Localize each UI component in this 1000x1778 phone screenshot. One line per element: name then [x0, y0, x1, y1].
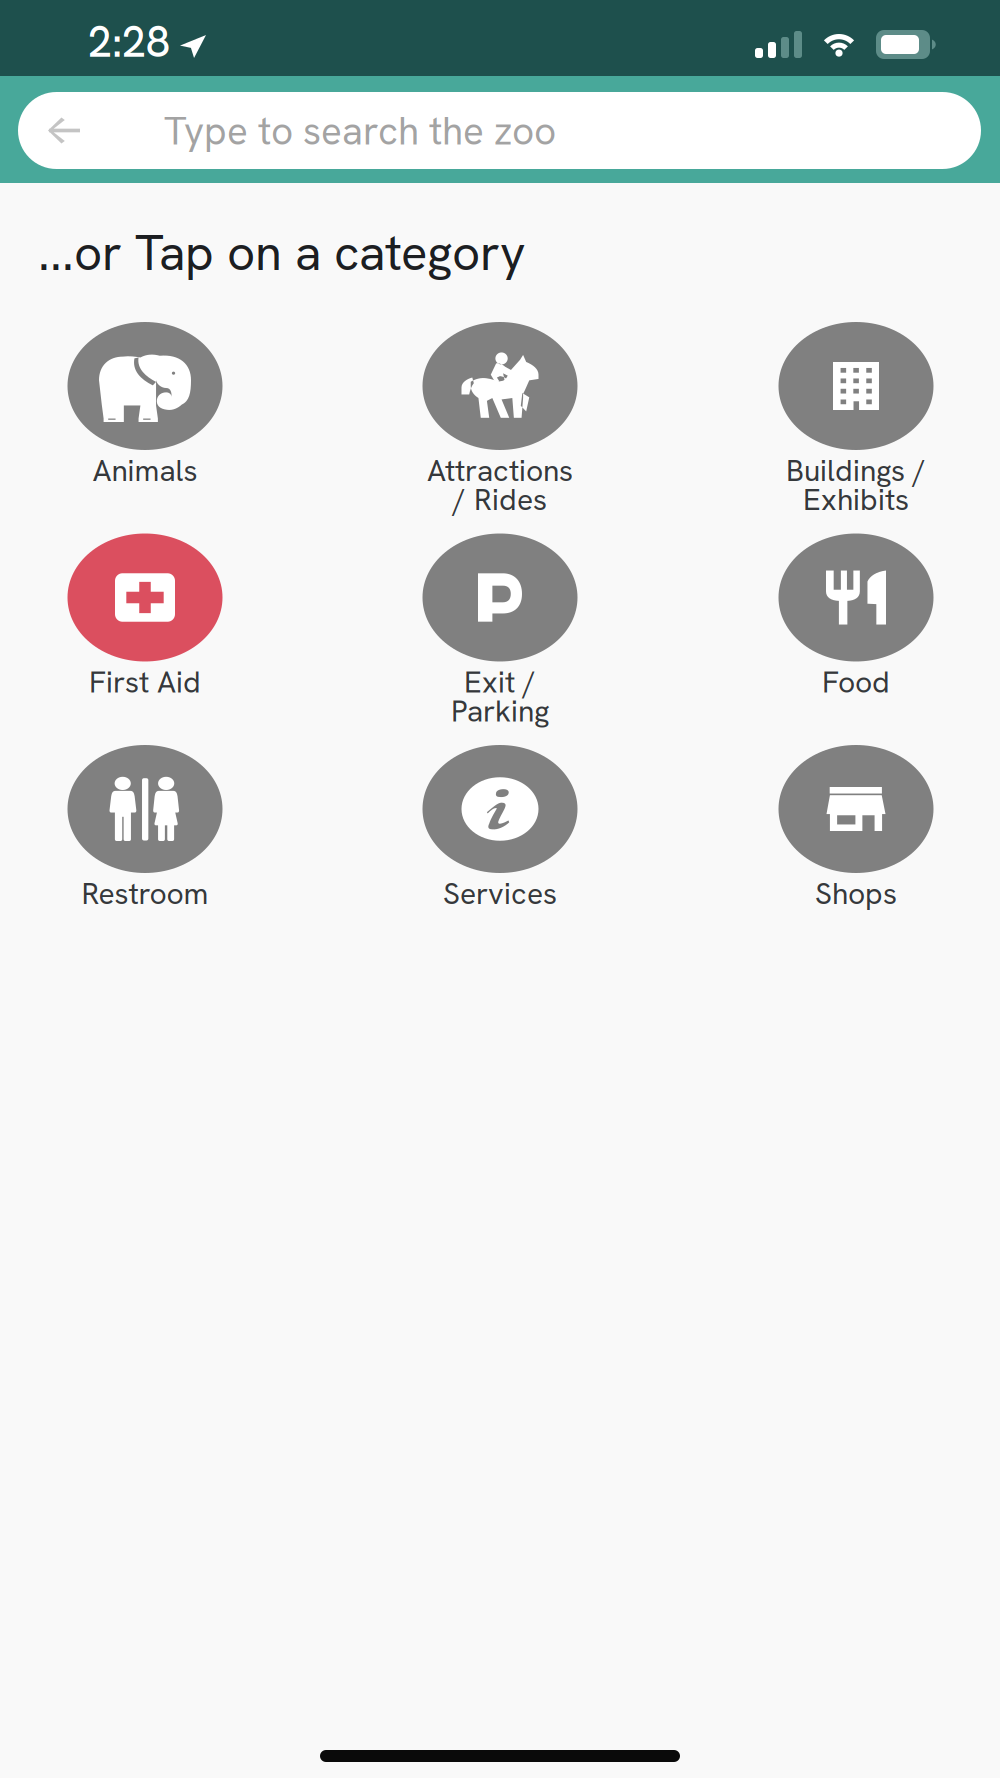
- button[interactable]: Food: [706, 533, 1000, 745]
- staticText: Parking: [451, 691, 549, 731]
- staticText: Restroom: [81, 874, 208, 913]
- button[interactable]: First Aid: [0, 533, 295, 745]
- staticText: Shops: [815, 874, 897, 913]
- button[interactable]: Shops: [706, 745, 1000, 957]
- staticText: Buildings /: [786, 451, 926, 490]
- staticText: First Aid: [89, 662, 201, 702]
- button[interactable]: Buildings /: [706, 322, 1000, 534]
- button[interactable]: Restroom: [0, 745, 295, 957]
- staticText: ...or Tap on a category: [38, 221, 526, 285]
- staticText: Exit /: [464, 662, 536, 702]
- button[interactable]: Animals: [0, 322, 295, 534]
- staticText: Exhibits: [803, 480, 909, 519]
- staticText: Attractions: [427, 451, 573, 490]
- button[interactable]: Services: [350, 745, 650, 957]
- button[interactable]: Type to search the zoo: [18, 92, 981, 169]
- staticText: 2:28: [88, 14, 170, 70]
- staticText: Services: [443, 874, 557, 913]
- button[interactable]: Back: [18, 92, 110, 169]
- staticText: Animals: [92, 451, 197, 490]
- staticText: Type to search the zoo: [164, 106, 556, 156]
- staticText: / Rides: [453, 480, 547, 519]
- staticText: Food: [822, 662, 890, 702]
- button[interactable]: Attractions: [350, 322, 650, 534]
- button[interactable]: Exit /: [350, 533, 650, 745]
